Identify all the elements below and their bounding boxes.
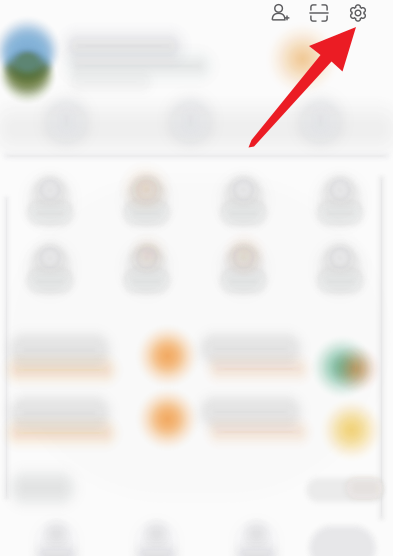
button[interactable]: Add contact: [270, 3, 290, 23]
button[interactable]: Scan code: [309, 3, 329, 23]
button[interactable]: Settings: [348, 3, 368, 23]
